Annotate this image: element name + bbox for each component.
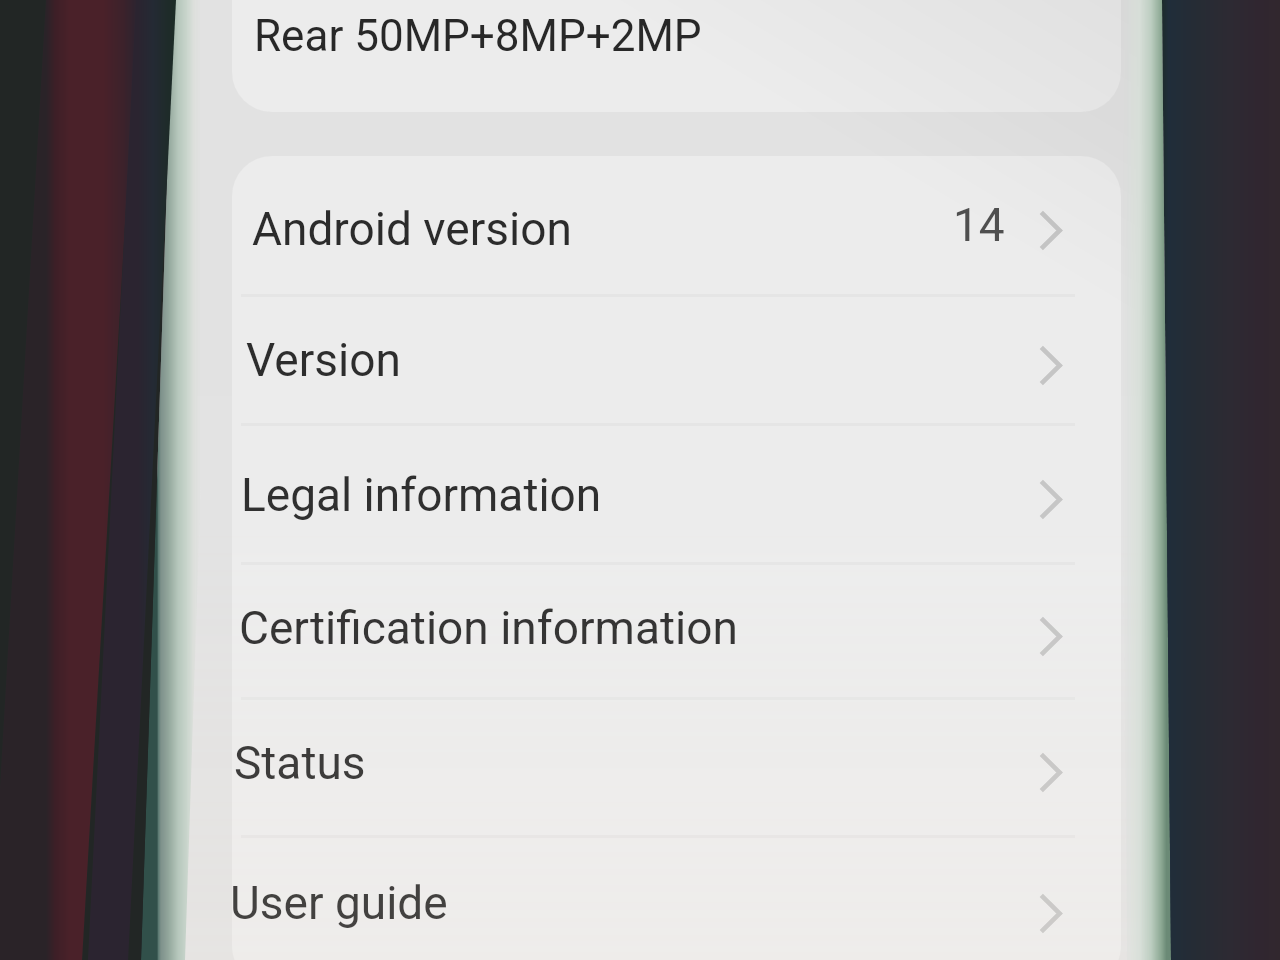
button[interactable]: Certification information [232, 565, 1121, 697]
staticText: Status [234, 736, 366, 790]
staticText: User guide [232, 876, 448, 930]
button[interactable]: Legal information [232, 426, 1121, 562]
button[interactable]: User guide [232, 838, 1121, 960]
button[interactable]: Status [232, 700, 1121, 835]
staticText: Legal information [241, 468, 602, 522]
button[interactable]: Rear 50MP+8MP+2MP [232, 0, 1121, 112]
button[interactable]: Android version [232, 156, 1121, 294]
staticText: Rear 50MP+8MP+2MP [254, 10, 702, 62]
staticText: 14 [953, 198, 1005, 252]
button[interactable]: Version [232, 297, 1121, 423]
staticText: Version [246, 333, 401, 387]
staticText: Certification information [239, 601, 738, 655]
staticText: Android version [252, 202, 572, 256]
